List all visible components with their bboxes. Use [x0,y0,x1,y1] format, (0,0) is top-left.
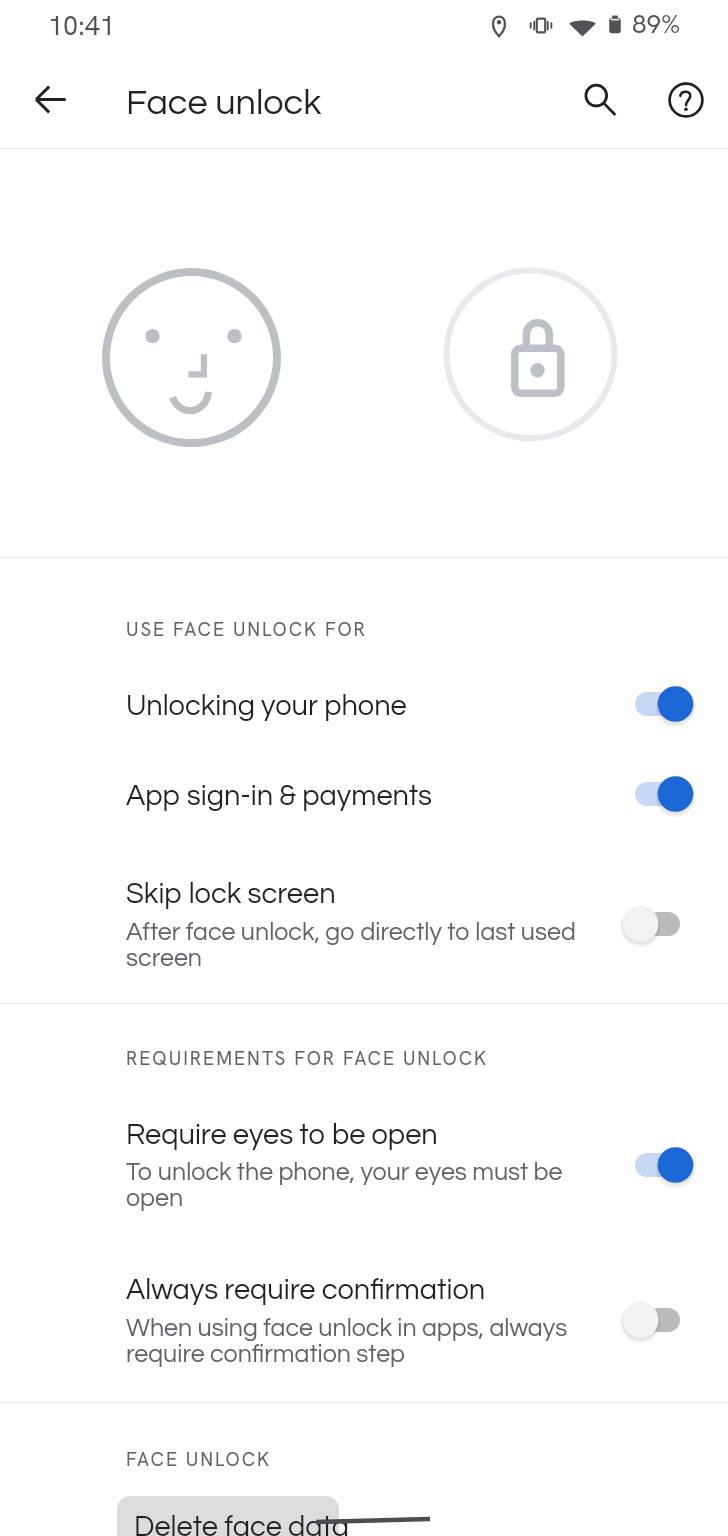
staticText: Always require confirmation [126,1275,582,1305]
staticText: 10:41 [48,8,115,43]
staticText: When using face unlock in apps, always r… [126,1315,582,1368]
button[interactable] [0,669,728,749]
button[interactable] [117,1496,339,1536]
staticText: After face unlock, go directly to last u… [126,919,582,972]
staticText: Unlocking your phone [126,691,582,721]
staticText: To unlock the phone, your eyes must be o… [126,1159,582,1212]
button[interactable]: On [622,771,696,817]
staticText: Require eyes to be open [126,1120,582,1150]
button[interactable]: Off [622,901,696,947]
button[interactable]: Search [564,66,636,138]
button[interactable]: Help [648,66,720,138]
staticText: App sign-in & payments [126,781,582,811]
staticText: Skip lock screen [126,879,582,909]
button[interactable]: USE FACE UNLOCK FOR [126,617,367,642]
staticText: 89% [632,7,681,41]
button[interactable] [0,1253,728,1383]
button[interactable]: Off [622,1297,696,1343]
button[interactable]: On [622,1142,696,1188]
button[interactable]: FACE UNLOCK [126,1447,272,1472]
button[interactable] [0,1098,728,1228]
button[interactable] [0,759,728,839]
button[interactable]: REQUIREMENTS FOR FACE UNLOCK [126,1046,489,1071]
button[interactable]: Navigate up [14,66,86,138]
staticText: Face unlock [126,84,322,121]
staticText: Delete face data [134,1512,350,1536]
button[interactable]: On [622,681,696,727]
button[interactable] [0,857,728,987]
